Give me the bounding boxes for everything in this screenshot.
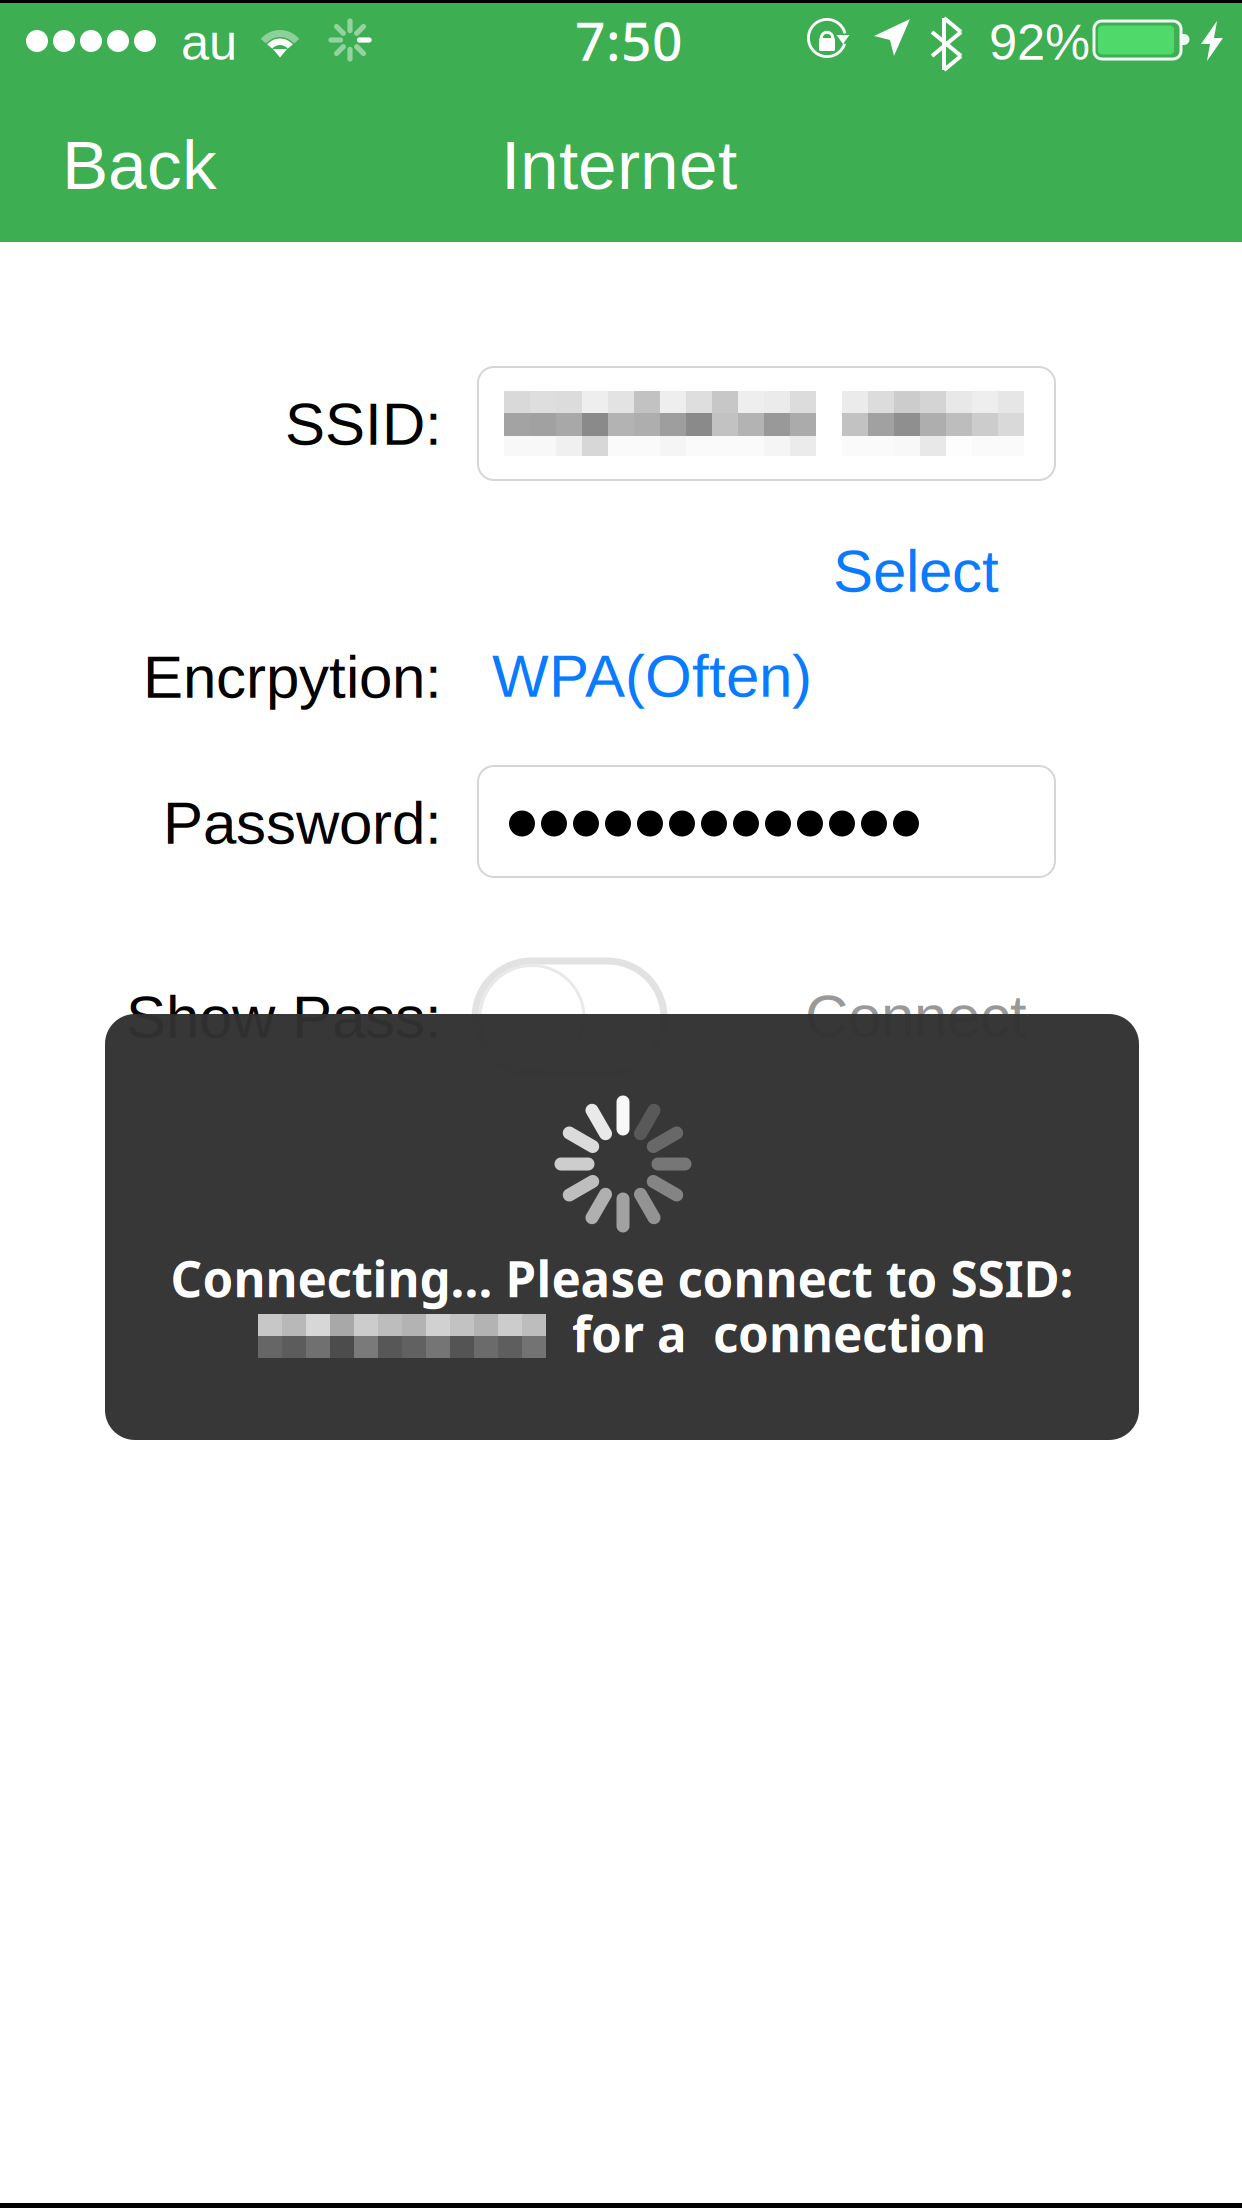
staticText: Password:: [163, 789, 442, 856]
button[interactable]: WPA(Often): [492, 633, 832, 719]
staticText: au: [181, 14, 237, 71]
staticText: Connect: [805, 982, 1027, 1049]
staticText: Select: [833, 537, 999, 604]
staticText: Encrpytion:: [143, 643, 442, 710]
staticText: WPA(Often): [492, 642, 812, 709]
staticText: for a connection: [546, 1299, 986, 1367]
staticText: Connecting... Please connect to SSID:: [170, 1244, 1073, 1312]
staticText: 92%: [989, 14, 1090, 71]
staticText: Back: [62, 126, 217, 204]
staticText: SSID:: [285, 390, 442, 457]
staticText: 7:50: [575, 4, 683, 76]
staticText: Internet: [501, 126, 737, 204]
button[interactable]: Back: [62, 111, 252, 219]
button[interactable]: Show password: [475, 961, 664, 1074]
button[interactable]: Select: [806, 528, 1026, 614]
staticText: Show Pass:: [126, 983, 442, 1050]
button[interactable]: Connect: [786, 973, 1046, 1059]
